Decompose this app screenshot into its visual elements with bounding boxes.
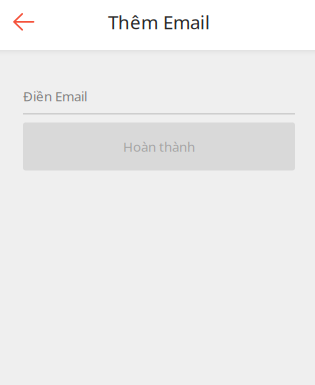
staticText: Hoàn thành [123,137,195,156]
button[interactable]: Điền Email [23,87,295,114]
button[interactable]: Back [0,0,56,50]
staticText: Điền Email [23,87,87,105]
staticText: Thêm Email [108,9,210,35]
button[interactable]: Hoàn thành [23,122,295,170]
